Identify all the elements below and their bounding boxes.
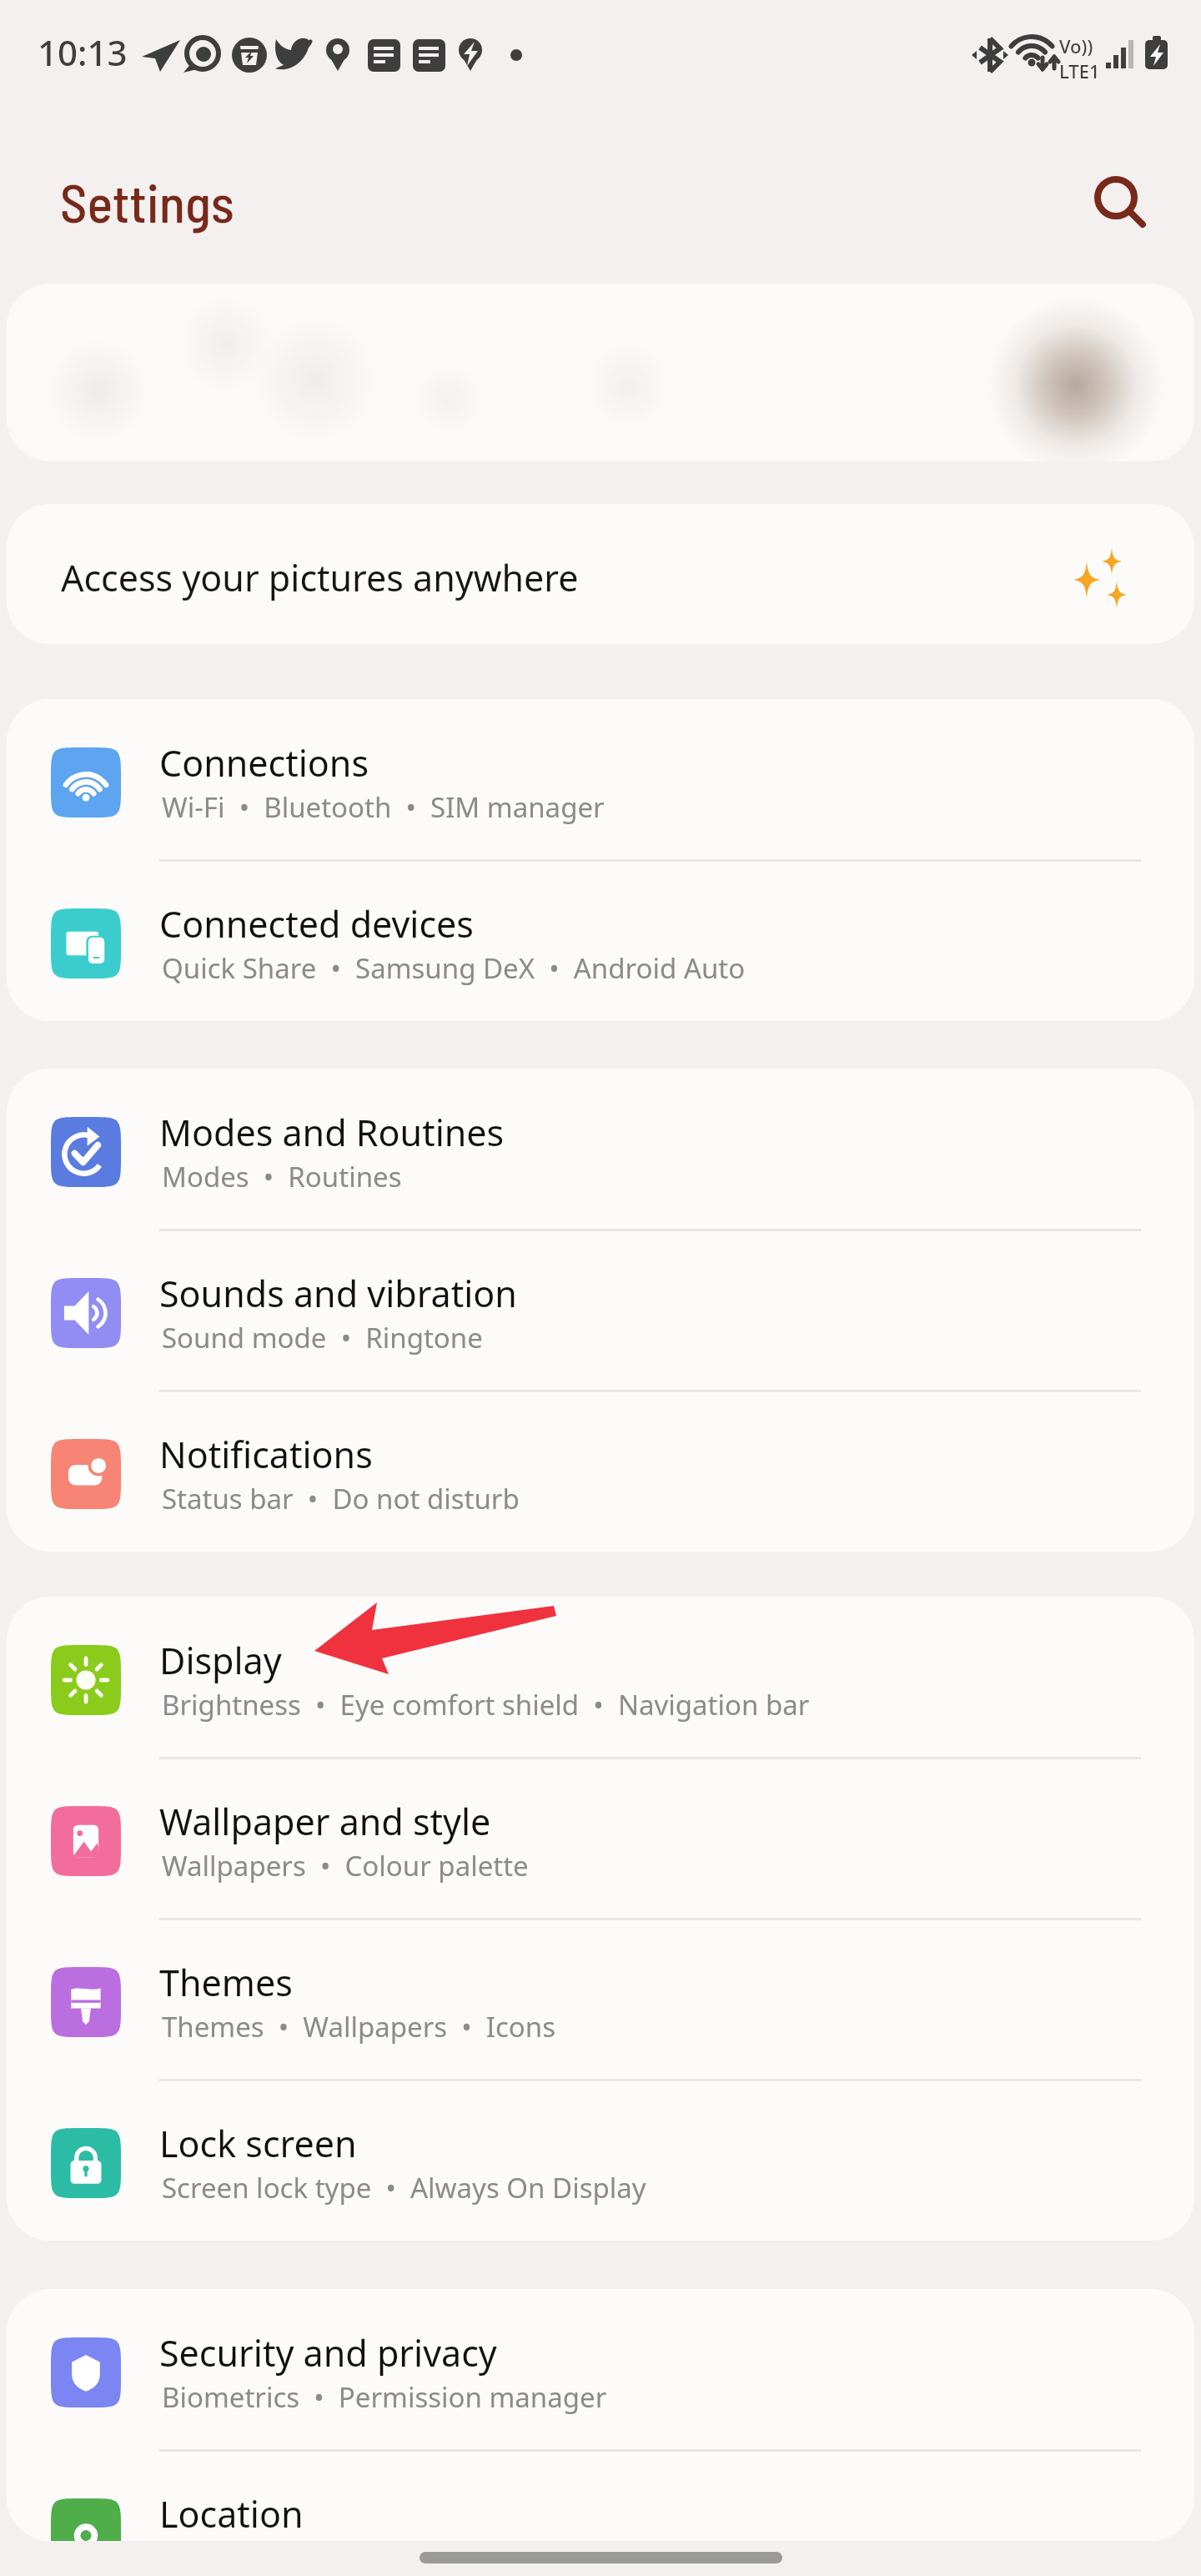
button[interactable]: Wallpaper and style: [7, 1758, 1194, 1919]
staticText: Status bar • Do not disturb: [162, 1480, 520, 1517]
button[interactable]: Location: [7, 2450, 1194, 2541]
staticText: Vo)): [1059, 33, 1093, 58]
staticText: Wallpapers • Colour palette: [162, 1847, 529, 1884]
button[interactable]: Display: [7, 1597, 1194, 1758]
button[interactable]: Connections: [7, 699, 1194, 860]
staticText: Themes: [159, 1958, 293, 2007]
staticText: Sounds and vibration: [159, 1269, 517, 1318]
button[interactable]: Search: [1074, 156, 1158, 239]
staticText: Connected devices: [159, 899, 474, 948]
staticText: Modes • Routines: [162, 1158, 402, 1195]
staticText: Quick Share • Samsung DeX • Android Auto: [162, 949, 746, 987]
staticText: Wallpaper and style: [159, 1797, 491, 1846]
staticText: Sound mode • Ringtone: [162, 1319, 483, 1356]
button[interactable]: [7, 284, 1194, 461]
staticText: Access your pictures anywhere: [61, 553, 579, 602]
staticText: Location: [159, 2489, 304, 2538]
staticText: Themes • Wallpapers • Icons: [162, 2008, 555, 2045]
staticText: Modes and Routines: [159, 1108, 505, 1157]
staticText: Notifications: [159, 1430, 373, 1479]
button[interactable]: Sounds and vibration: [7, 1230, 1194, 1391]
button[interactable]: Lock screen: [7, 2080, 1194, 2241]
staticText: Security and privacy: [159, 2328, 497, 2377]
staticText: Display: [159, 1636, 282, 1685]
staticText: Connections: [159, 738, 369, 787]
button[interactable]: Notifications: [7, 1391, 1194, 1552]
button[interactable]: Access your pictures anywhere: [7, 504, 1194, 644]
staticText: Brightness • Eye comfort shield • Naviga…: [162, 1686, 810, 1723]
button[interactable]: Connected devices: [7, 860, 1194, 1021]
button[interactable]: Security and privacy: [7, 2289, 1194, 2450]
staticText: LTE1: [1059, 58, 1100, 83]
staticText: Wi-Fi • Bluetooth • SIM manager: [162, 788, 605, 826]
staticText: Lock screen: [159, 2119, 357, 2168]
button[interactable]: Modes and Routines: [7, 1069, 1194, 1230]
button[interactable]: Themes: [7, 1919, 1194, 2080]
staticText: Settings: [60, 169, 234, 234]
staticText: 10:13: [38, 28, 128, 76]
staticText: Biometrics • Permission manager: [162, 2378, 607, 2416]
staticText: Screen lock type • Always On Display: [162, 2169, 646, 2206]
